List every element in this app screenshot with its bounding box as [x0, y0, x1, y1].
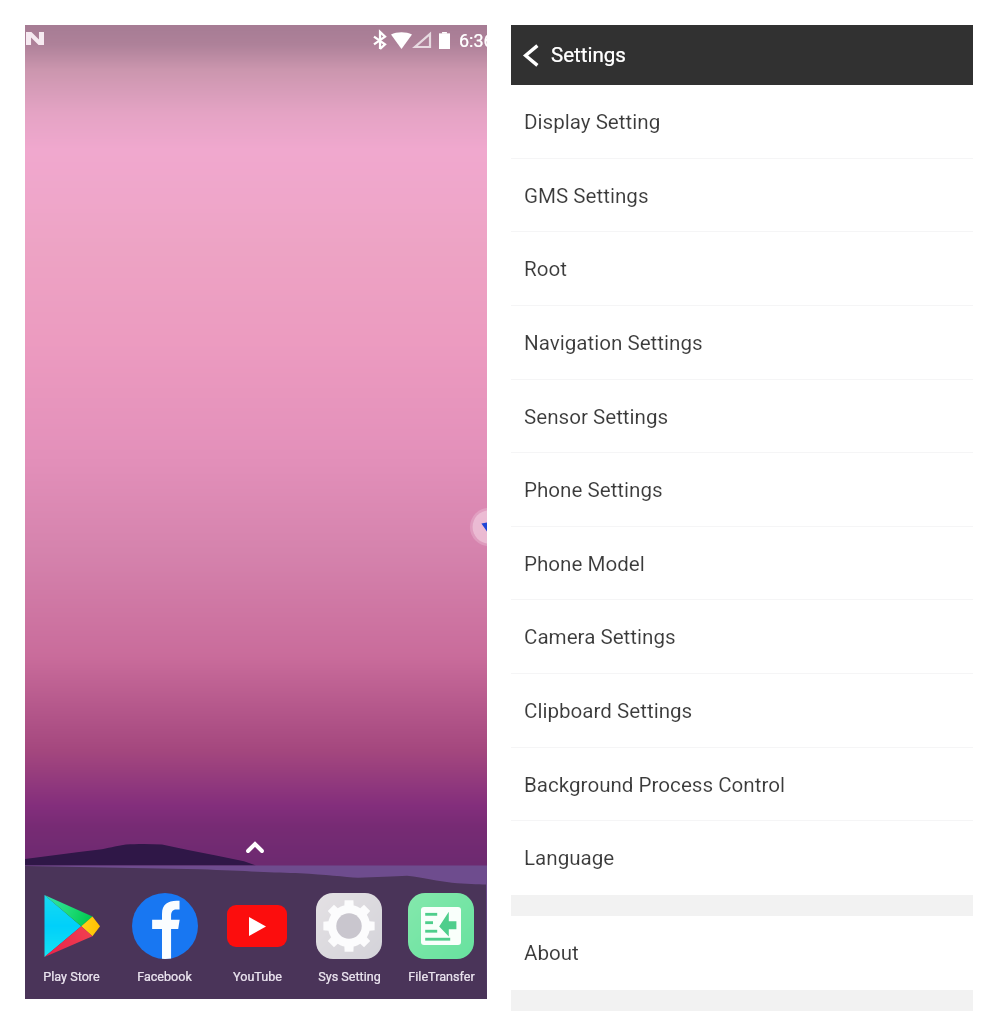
staticText: Phone Model	[524, 552, 645, 576]
button[interactable]: FileTransfer	[395, 888, 487, 984]
staticText: About	[524, 941, 579, 965]
button[interactable]: Camera Settings	[511, 600, 973, 674]
staticText: Language	[524, 846, 615, 870]
button[interactable]: Clipboard Settings	[511, 674, 973, 748]
button[interactable]: Play Store	[25, 888, 118, 984]
staticText: Clipboard Settings	[524, 699, 693, 723]
button[interactable]: Back	[511, 35, 551, 75]
button[interactable]: Phone Model	[511, 527, 973, 600]
staticText: Phone Settings	[524, 478, 663, 502]
button[interactable]: Phone Settings	[511, 453, 973, 527]
staticText: Camera Settings	[524, 625, 676, 649]
button[interactable]: Sensor Settings	[511, 380, 973, 453]
staticText: Facebook	[137, 969, 192, 984]
staticText: Navigation Settings	[524, 331, 703, 355]
button[interactable]: GMS Settings	[511, 159, 973, 232]
button[interactable]: Open app drawer	[240, 832, 270, 862]
staticText: Play Store	[43, 969, 100, 984]
staticText: Settings	[551, 43, 626, 67]
staticText: 6:36	[459, 30, 487, 51]
button[interactable]: Language	[511, 821, 973, 895]
button[interactable]: Background Process Control	[511, 748, 973, 821]
staticText: FileTransfer	[408, 969, 475, 984]
button[interactable]: Facebook	[118, 888, 211, 984]
staticText: Sensor Settings	[524, 405, 669, 429]
staticText: Display Setting	[524, 110, 661, 134]
staticText: YouTube	[233, 969, 282, 984]
button[interactable]: Root	[511, 232, 973, 306]
staticText: Sys Setting	[318, 969, 381, 984]
button[interactable]: YouTube	[211, 888, 303, 984]
button[interactable]: Display Setting	[511, 85, 973, 159]
button[interactable]: About	[511, 916, 973, 990]
staticText: Background Process Control	[524, 773, 785, 797]
button[interactable]: Sys Setting	[303, 888, 395, 984]
staticText: GMS Settings	[524, 184, 649, 208]
staticText: Root	[524, 257, 567, 281]
button[interactable]: Navigation Settings	[511, 306, 973, 380]
